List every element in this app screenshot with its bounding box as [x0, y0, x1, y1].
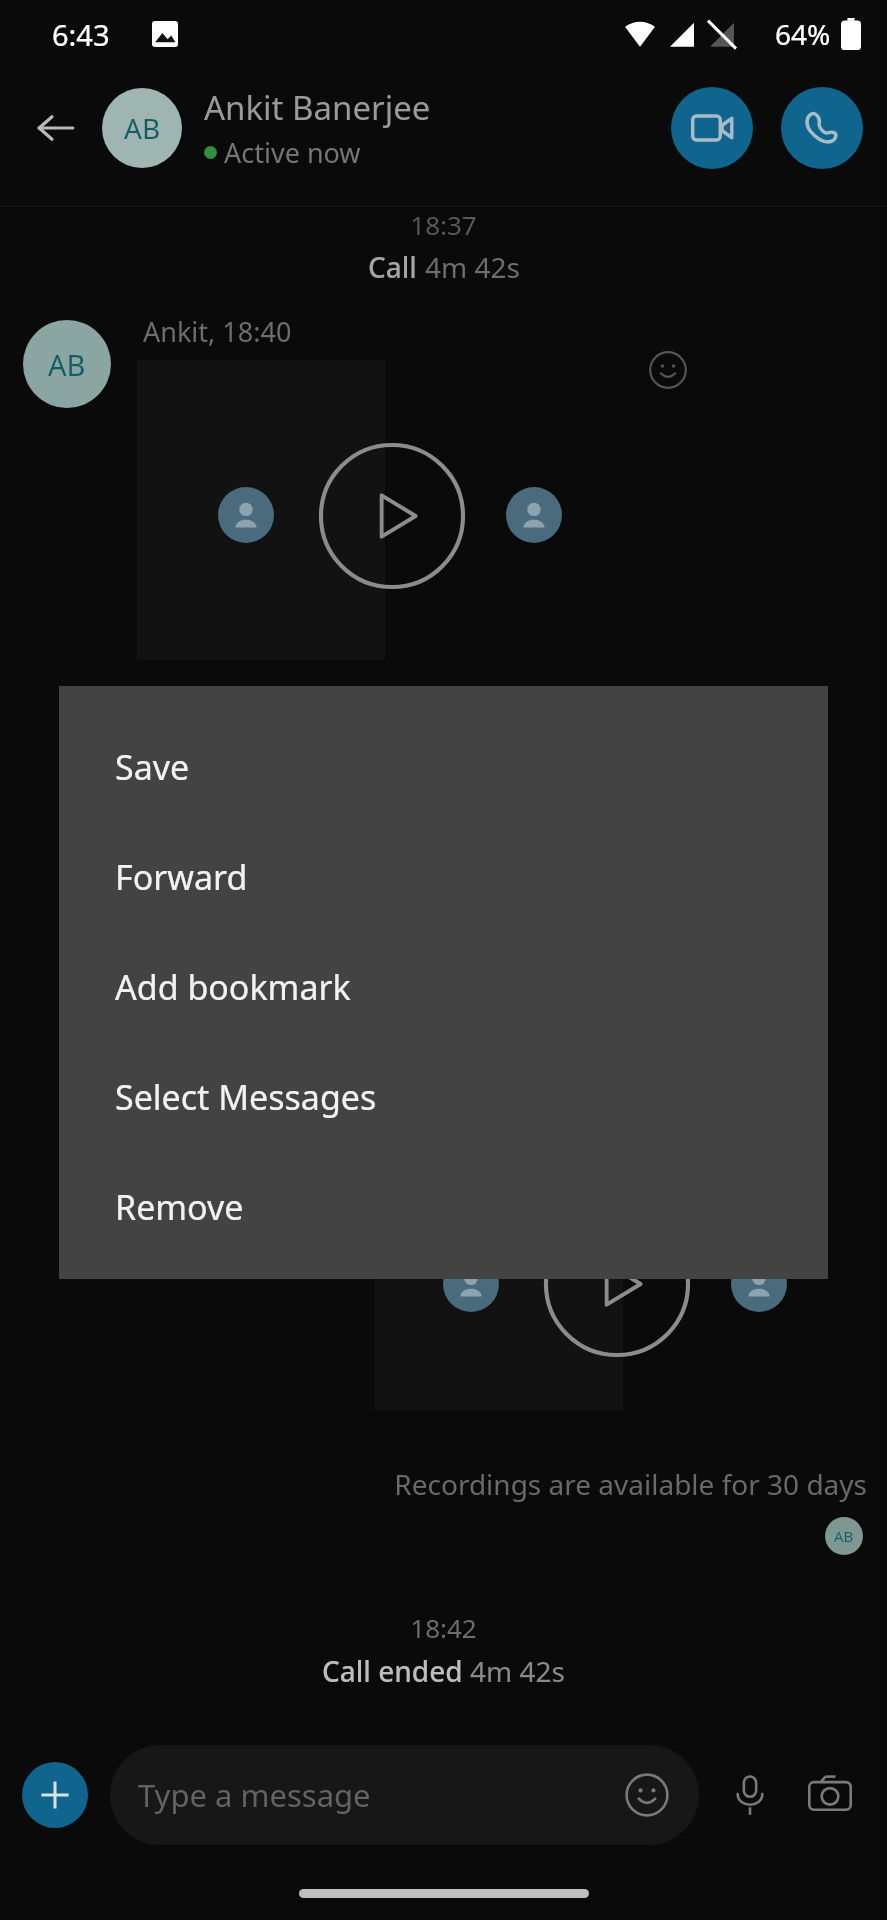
button[interactable]: Select Messages	[59, 1042, 828, 1152]
staticText: Forward	[115, 854, 248, 900]
staticText: 4m 42s	[470, 1652, 565, 1690]
button[interactable]: Camera	[795, 1760, 865, 1830]
button[interactable]: Save	[59, 712, 828, 822]
button[interactable]: Remove	[59, 1152, 828, 1262]
button[interactable]: Back	[24, 96, 88, 160]
button[interactable]: Audio call	[781, 87, 863, 169]
staticText: Type a message	[138, 1774, 623, 1816]
button[interactable]: Ankit Banerjee	[204, 85, 671, 171]
staticText: Active now	[224, 134, 361, 171]
staticText: Select Messages	[115, 1074, 377, 1120]
button[interactable]: Voice message	[715, 1760, 785, 1830]
staticText: Ankit Banerjee	[204, 85, 431, 130]
staticText: Save	[115, 744, 190, 790]
staticText: 64%	[775, 15, 831, 53]
staticText: AB	[124, 109, 161, 147]
staticText: Ankit, 18:40	[143, 313, 292, 350]
staticText: Remove	[115, 1184, 244, 1230]
staticText: AB	[834, 1526, 854, 1546]
staticText: 18:42	[0, 1610, 887, 1645]
staticText: Call ended	[322, 1652, 470, 1690]
staticText: Recordings are available for 30 days	[0, 1465, 867, 1503]
button[interactable]: Emoji	[623, 1771, 671, 1819]
button[interactable]: Type a message	[110, 1745, 699, 1845]
staticText: Add bookmark	[115, 964, 351, 1010]
staticText: 18:37	[0, 207, 887, 242]
button[interactable]: Add attachment	[22, 1762, 88, 1828]
button[interactable]: Forward	[59, 822, 828, 932]
button[interactable]: AB	[102, 88, 182, 168]
staticText: Call	[368, 248, 425, 286]
button[interactable]: Add bookmark	[59, 932, 828, 1042]
button[interactable]: Video call	[671, 87, 753, 169]
staticText: 6:43	[52, 15, 110, 54]
staticText: 4m 42s	[425, 248, 520, 286]
staticText: AB	[48, 345, 86, 384]
